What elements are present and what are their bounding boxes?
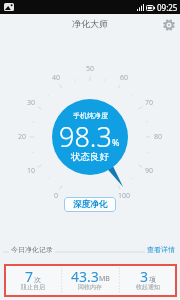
button[interactable]: 43.3: [61, 264, 119, 297]
staticText: 净化大师: [72, 18, 108, 29]
staticText: MB: [99, 274, 110, 284]
staticText: 09:25: [157, 2, 178, 13]
staticText: 今日净化记录: [11, 245, 53, 254]
staticText: 80: [148, 132, 168, 142]
staticText: 10: [21, 166, 41, 176]
staticText: 收起通知: [136, 283, 160, 291]
staticText: 0: [46, 191, 66, 201]
staticText: 90: [139, 166, 159, 176]
staticText: 回收内存: [78, 283, 102, 291]
staticText: %: [112, 136, 120, 148]
staticText: 60: [114, 73, 134, 83]
staticText: 手机纯净度: [73, 111, 108, 120]
staticText: 40: [46, 73, 66, 83]
staticText: 3: [140, 267, 149, 286]
staticText: 深度净化: [73, 199, 107, 210]
staticText: 次: [34, 275, 41, 284]
staticText: 查看详情: [147, 245, 175, 254]
staticText: 98.3: [59, 118, 112, 155]
button[interactable]: 深度净化: [64, 197, 116, 212]
staticText: 项: [149, 275, 156, 284]
staticText: 70: [139, 98, 159, 108]
staticText: 30: [21, 98, 41, 108]
staticText: 7: [25, 267, 34, 286]
staticText: 43.3: [71, 267, 99, 286]
staticText: 100: [114, 191, 134, 201]
button[interactable]: Settings: [158, 14, 179, 35]
staticText: 20: [12, 132, 32, 142]
button[interactable]: 3: [119, 264, 177, 297]
staticText: 状态良好: [71, 151, 109, 163]
staticText: 50: [80, 64, 100, 74]
staticText: 阻止自启: [21, 283, 45, 291]
button[interactable]: 查看详情: [147, 245, 175, 254]
button[interactable]: 手机纯净度: [52, 99, 128, 175]
button[interactable]: 7: [4, 264, 61, 297]
